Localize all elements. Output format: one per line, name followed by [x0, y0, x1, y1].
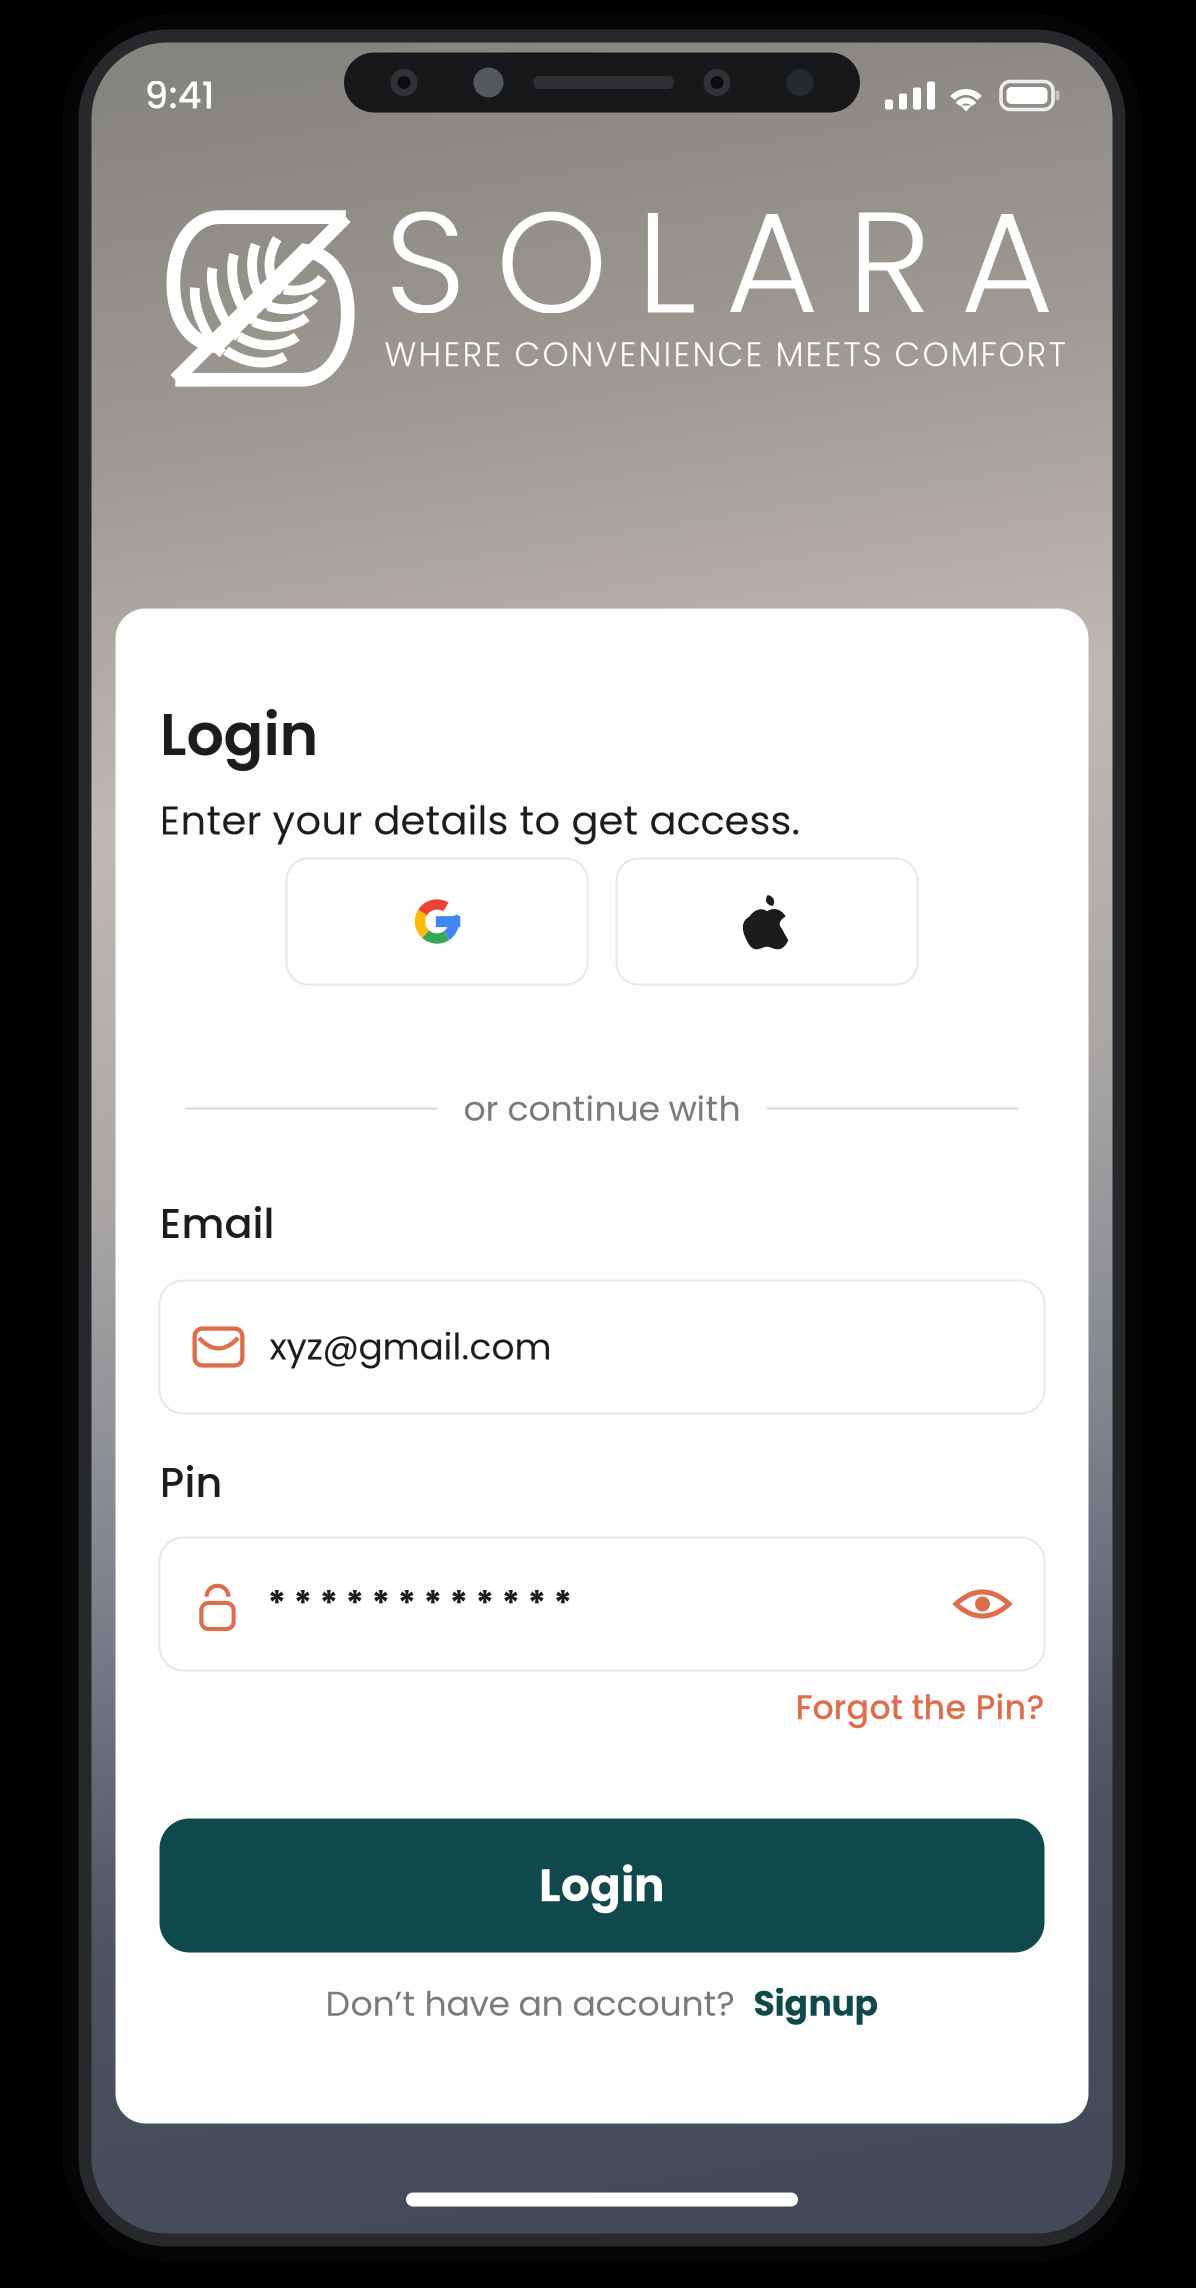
staticText: W H E R E C O N V E N I E N C E M E E T … — [384, 331, 1065, 378]
button[interactable]: Show PIN — [953, 1583, 1011, 1625]
button[interactable]: Forgot the Pin? — [159, 1684, 1044, 1730]
staticText: Signup — [753, 1979, 878, 2028]
staticText: or continue with — [463, 1084, 740, 1133]
button[interactable]: Don’t have an account? — [159, 1980, 1044, 2026]
button[interactable]: Continue with Apple — [616, 858, 917, 984]
staticText: Email — [159, 1195, 274, 1252]
staticText: Pin — [159, 1454, 222, 1511]
staticText: Login — [539, 1854, 665, 1917]
staticText: Login — [159, 693, 318, 775]
staticText: Enter your details to get access. — [159, 792, 799, 848]
button[interactable]: Login — [159, 1818, 1044, 1952]
staticText: xyz@gmail.com — [269, 1322, 551, 1372]
staticText: Forgot the Pin? — [795, 1684, 1044, 1731]
staticText: 9:41 — [144, 69, 214, 122]
staticText: S O L A R A — [384, 163, 1053, 362]
staticText: Don’t have an account? — [325, 1979, 734, 2028]
button[interactable]: Continue with Google — [286, 858, 587, 984]
staticText: * * * * * * * * * * * * — [267, 1580, 572, 1628]
